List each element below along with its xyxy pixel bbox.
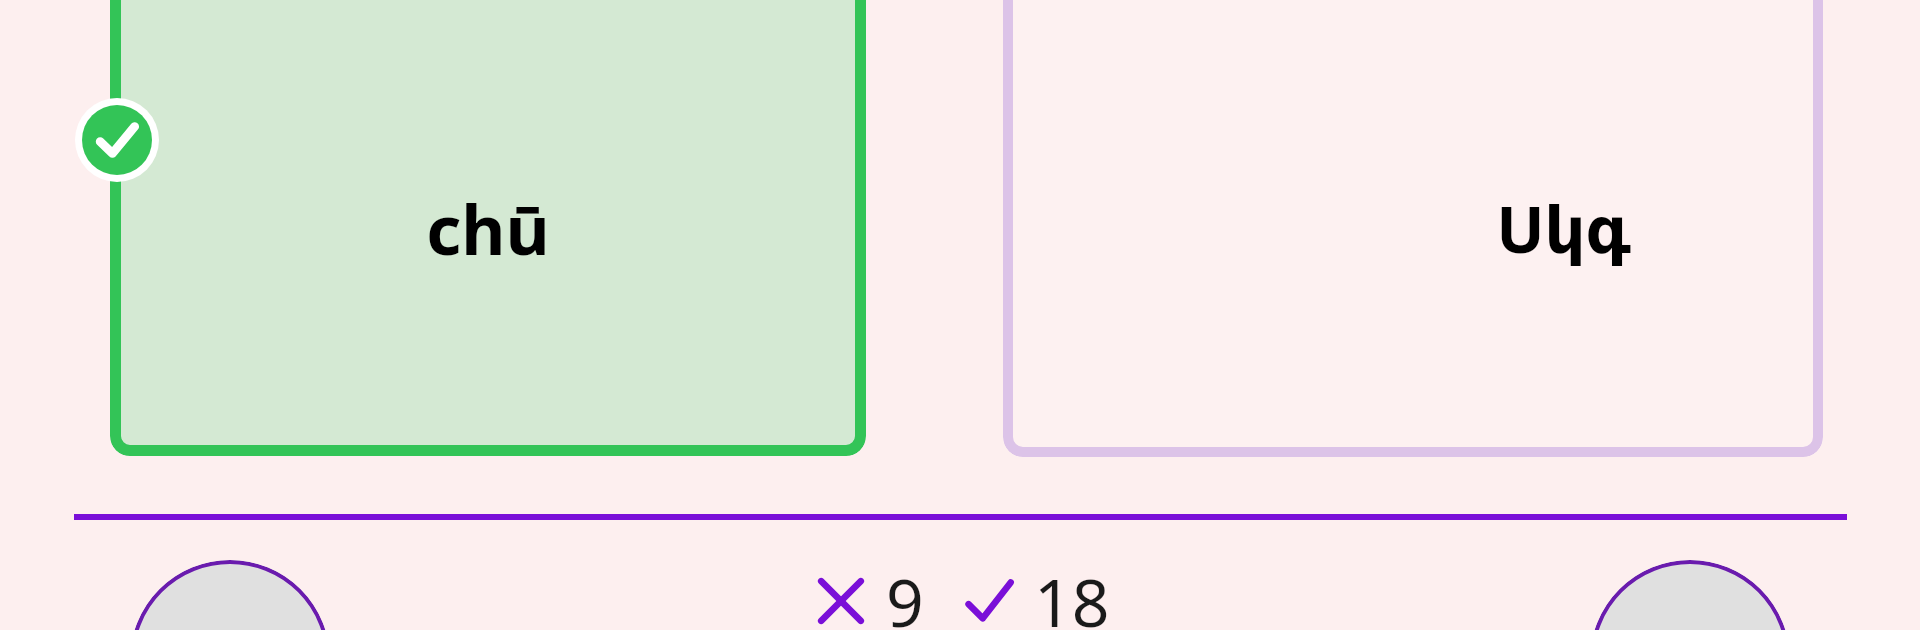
button[interactable]: Uկգ [1003,0,1823,457]
button[interactable]: chū [110,0,866,456]
staticText: 9 [886,556,924,630]
button[interactable]: Next [1590,560,1790,630]
staticText: 18 [1034,556,1110,630]
staticText: Uկգ [1496,185,1631,272]
other: Correct answer [75,98,159,182]
button[interactable]: Previous [130,560,330,630]
staticText: chū [426,182,550,275]
